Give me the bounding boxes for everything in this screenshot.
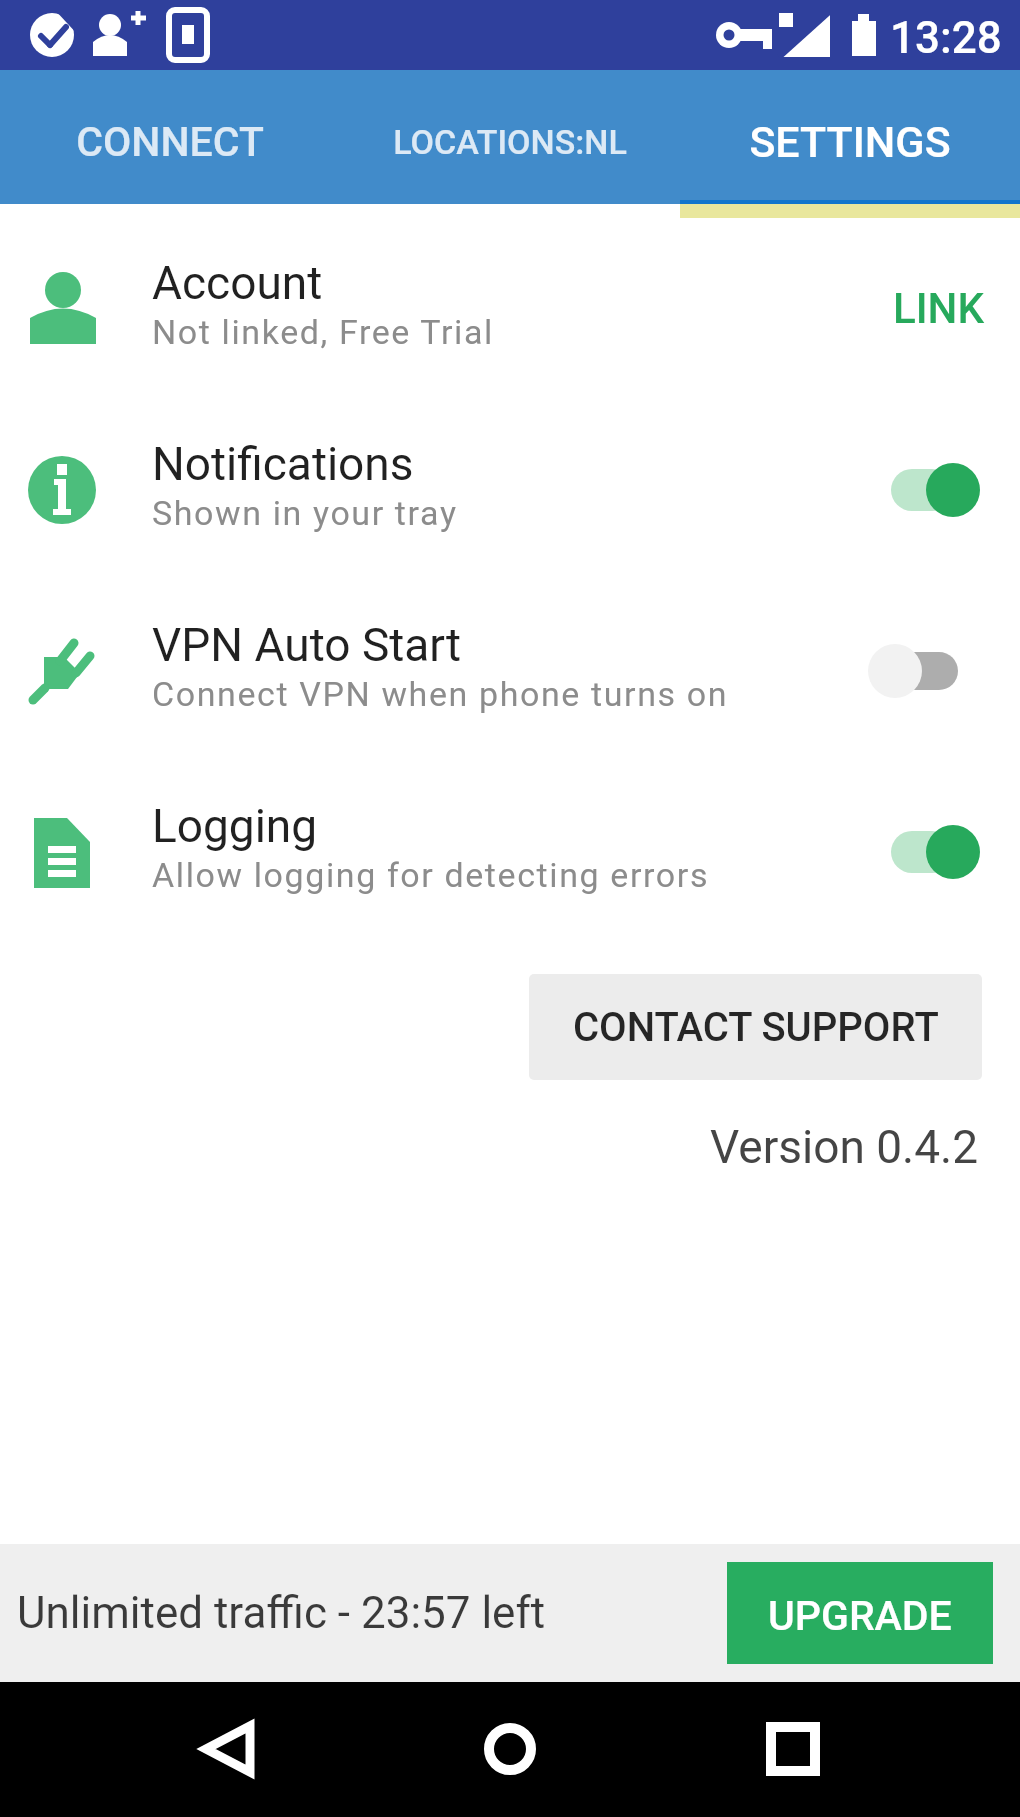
staticText: LINK xyxy=(893,284,984,333)
staticText: Shown in your tray xyxy=(152,493,458,533)
button[interactable]: UPGRADE xyxy=(727,1562,993,1664)
button[interactable]: Switch on xyxy=(881,460,993,520)
staticText: Account xyxy=(152,256,323,310)
staticText: LOCATIONS:NL xyxy=(393,122,627,162)
staticText: Allow logging for detecting errors xyxy=(152,855,710,895)
button[interactable]: Logging xyxy=(0,761,1020,942)
staticText: Unlimited traffic - 23:57 left xyxy=(17,1587,546,1639)
staticText: SETTINGS xyxy=(749,117,951,167)
button[interactable]: Back xyxy=(0,1682,368,1817)
button[interactable]: VPN Auto Start xyxy=(0,580,1020,761)
button[interactable]: Home xyxy=(368,1682,651,1817)
button[interactable]: Account xyxy=(0,218,1020,399)
staticText: CONTACT SUPPORT xyxy=(573,1004,939,1051)
staticText: Logging xyxy=(152,799,318,853)
button[interactable]: Recents xyxy=(651,1682,1020,1817)
staticText: Version 0.4.2 xyxy=(710,1120,979,1174)
staticText: UPGRADE xyxy=(768,1592,952,1640)
button[interactable]: LOCATIONS:NL xyxy=(340,70,680,200)
staticText: CONNECT xyxy=(76,118,264,166)
staticText: 13:28 xyxy=(890,12,1002,64)
button[interactable]: CONNECT xyxy=(0,70,340,200)
staticText: Notifications xyxy=(152,437,414,491)
staticText: VPN Auto Start xyxy=(152,618,462,672)
staticText: Connect VPN when phone turns on xyxy=(152,674,729,714)
button[interactable]: Switch on xyxy=(881,822,993,882)
staticText: Not linked, Free Trial xyxy=(152,312,494,352)
button[interactable]: Switch off xyxy=(881,641,993,701)
button[interactable]: LINK xyxy=(884,274,993,343)
button[interactable]: CONTACT SUPPORT xyxy=(529,974,982,1080)
button[interactable]: Notifications xyxy=(0,399,1020,580)
button[interactable]: SETTINGS xyxy=(680,70,1020,200)
